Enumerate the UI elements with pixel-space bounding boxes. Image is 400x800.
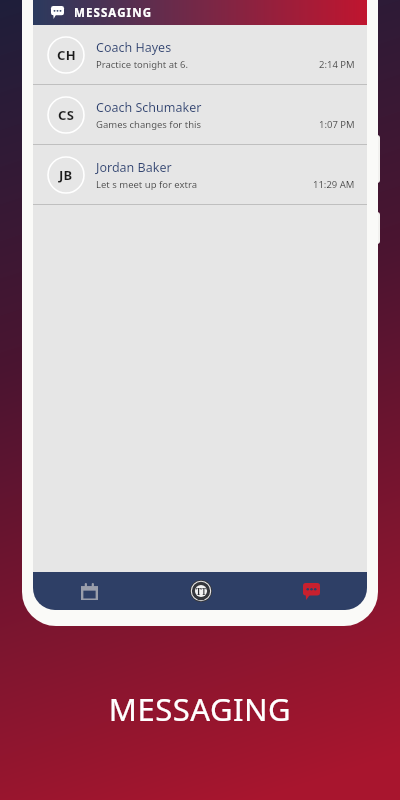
staticText: Jordan Baker <box>96 159 172 176</box>
staticText: JB <box>59 166 73 184</box>
other: Messaging <box>51 6 64 19</box>
button[interactable]: JB <box>33 145 367 204</box>
staticText: 2:14 PM <box>319 58 355 71</box>
button[interactable]: Calendar <box>33 572 145 610</box>
staticText: TT <box>196 586 207 597</box>
staticText: Coach Hayes <box>96 39 172 56</box>
staticText: MESSAGING <box>74 5 153 21</box>
staticText: Coach Schumaker <box>96 99 202 116</box>
staticText: 11:29 AM <box>313 178 355 191</box>
staticText: Let s meet up for extra skill work. Se… <box>96 178 204 191</box>
button[interactable]: Messaging <box>33 0 367 25</box>
staticText: Practice tonight at 6. Bring your water… <box>96 58 207 71</box>
staticText: Games changes for this weekend pos… <box>96 118 207 131</box>
button[interactable]: Messages <box>256 572 367 610</box>
staticText: CS <box>58 106 75 124</box>
button[interactable]: CS <box>33 85 367 144</box>
button[interactable]: Team home <box>145 572 256 610</box>
staticText: MESSAGING <box>0 688 400 730</box>
staticText: 1:07 PM <box>319 118 355 131</box>
staticText: CH <box>57 46 76 64</box>
button[interactable]: CH <box>33 25 367 84</box>
